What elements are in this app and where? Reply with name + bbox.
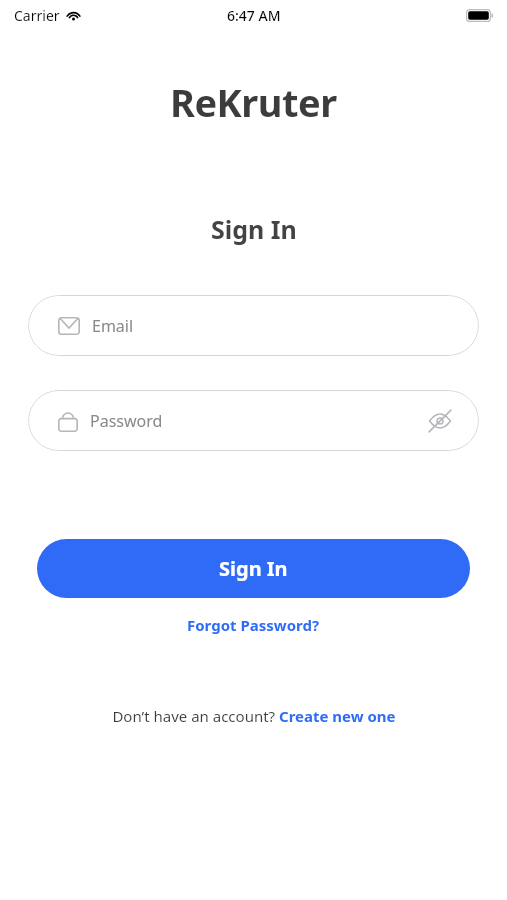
button[interactable]: Show password bbox=[423, 404, 457, 438]
staticText: Sign In bbox=[219, 555, 288, 582]
button[interactable]: Forgot Password? bbox=[177, 610, 330, 640]
button[interactable]: Sign In bbox=[37, 539, 470, 598]
staticText: ReKruter bbox=[170, 76, 337, 128]
staticText: Don’t have an account? Create new one bbox=[112, 706, 396, 726]
staticText: Sign In bbox=[211, 212, 297, 246]
button[interactable]: Don’t have an account? Create new one bbox=[104, 702, 404, 730]
staticText: Carrier bbox=[14, 6, 60, 25]
staticText: Email bbox=[92, 315, 457, 337]
button[interactable]: Email bbox=[28, 295, 479, 356]
staticText: Password bbox=[90, 410, 423, 432]
staticText: Forgot Password? bbox=[187, 615, 320, 635]
staticText: 6:47 AM bbox=[227, 6, 281, 25]
button[interactable]: Password bbox=[28, 390, 479, 451]
